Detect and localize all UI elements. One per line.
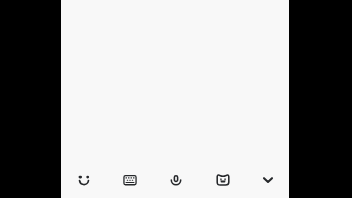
button[interactable]: Voice input — [153, 162, 199, 198]
button[interactable]: Collapse keyboard — [245, 162, 289, 198]
button[interactable]: Emoji — [61, 162, 107, 198]
button[interactable]: Stickers — [199, 162, 245, 198]
button[interactable]: Keyboard — [107, 162, 153, 198]
